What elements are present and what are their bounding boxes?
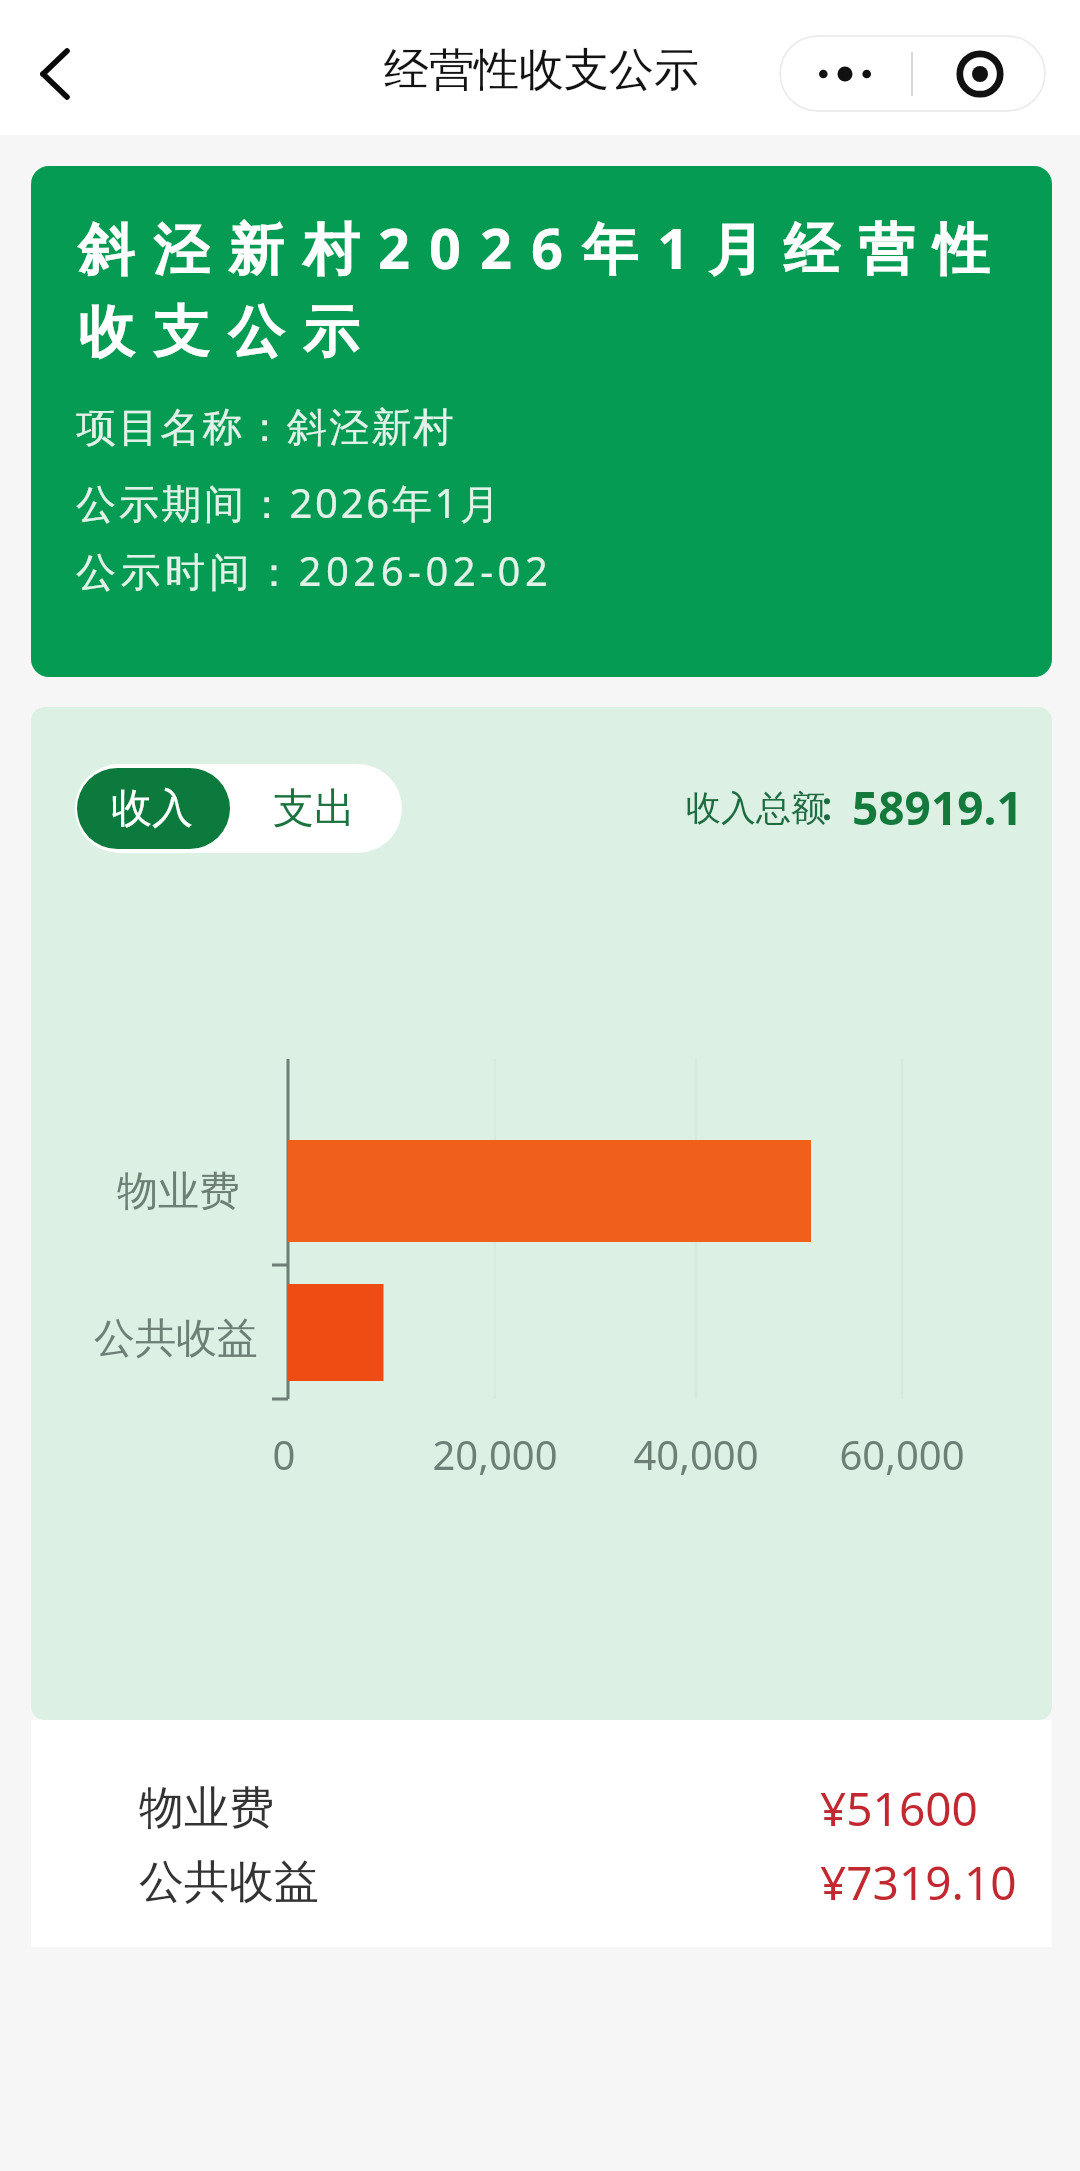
- button[interactable]: Close mini program: [913, 35, 1046, 112]
- button[interactable]: 物业费: [31, 1772, 1052, 1844]
- button[interactable]: More options: [779, 35, 1046, 112]
- staticText: 公示时间：2026-02-02: [76, 543, 553, 598]
- staticText: 斜泾新村2026年1月经营性收支公示: [78, 209, 1028, 368]
- staticText: 收入总额: [686, 786, 826, 830]
- button[interactable]: More options: [779, 35, 911, 112]
- staticText: 支出: [273, 783, 355, 835]
- staticText: ¥51600: [820, 1777, 978, 1840]
- staticText: 60,000: [792, 1427, 1012, 1481]
- staticText: 经营性收支公示: [384, 42, 699, 99]
- staticText: ¥7319.10: [820, 1851, 1017, 1914]
- button[interactable]: 支出: [230, 764, 402, 853]
- staticText: 项目名称：斜泾新村: [76, 402, 456, 452]
- staticText: 20,000: [385, 1427, 605, 1481]
- staticText: 40,000: [586, 1427, 806, 1481]
- staticText: 0: [174, 1427, 394, 1481]
- staticText: 公示期间：2026年1月: [76, 475, 503, 530]
- staticText: 58919.1: [852, 776, 1023, 839]
- staticText: 收入: [111, 783, 193, 835]
- button[interactable]: Back: [14, 33, 96, 115]
- staticText: 物业费: [139, 1780, 274, 1837]
- staticText: 公共收益: [139, 1854, 319, 1911]
- staticText: 物业费: [34, 1166, 240, 1218]
- staticText: 公共收益: [34, 1313, 258, 1365]
- button[interactable]: 收入: [77, 768, 230, 849]
- button[interactable]: 公共收益: [31, 1846, 1052, 1918]
